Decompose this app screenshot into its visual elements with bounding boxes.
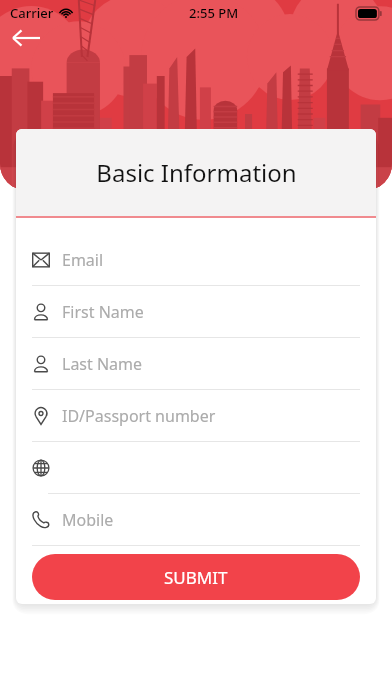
- button[interactable]: Back: [6, 18, 46, 58]
- staticText: Basic Information: [96, 156, 297, 189]
- button[interactable]: Email: [16, 234, 376, 286]
- staticText: Email: [62, 249, 104, 271]
- button[interactable]: ID/Passport number: [16, 390, 376, 442]
- staticText: 2:55 PM: [189, 4, 239, 22]
- button[interactable]: Last Name: [16, 338, 376, 390]
- staticText: Last Name: [62, 353, 143, 375]
- button[interactable]: SUBMIT: [32, 554, 360, 600]
- staticText: SUBMIT: [164, 566, 228, 589]
- staticText: Carrier: [10, 4, 54, 22]
- button[interactable]: First Name: [16, 286, 376, 338]
- staticText: ID/Passport number: [62, 405, 216, 427]
- button[interactable]: Mobile: [16, 494, 376, 546]
- staticText: Mobile: [62, 509, 114, 531]
- staticText: First Name: [62, 301, 144, 323]
- button[interactable]: [16, 442, 376, 494]
